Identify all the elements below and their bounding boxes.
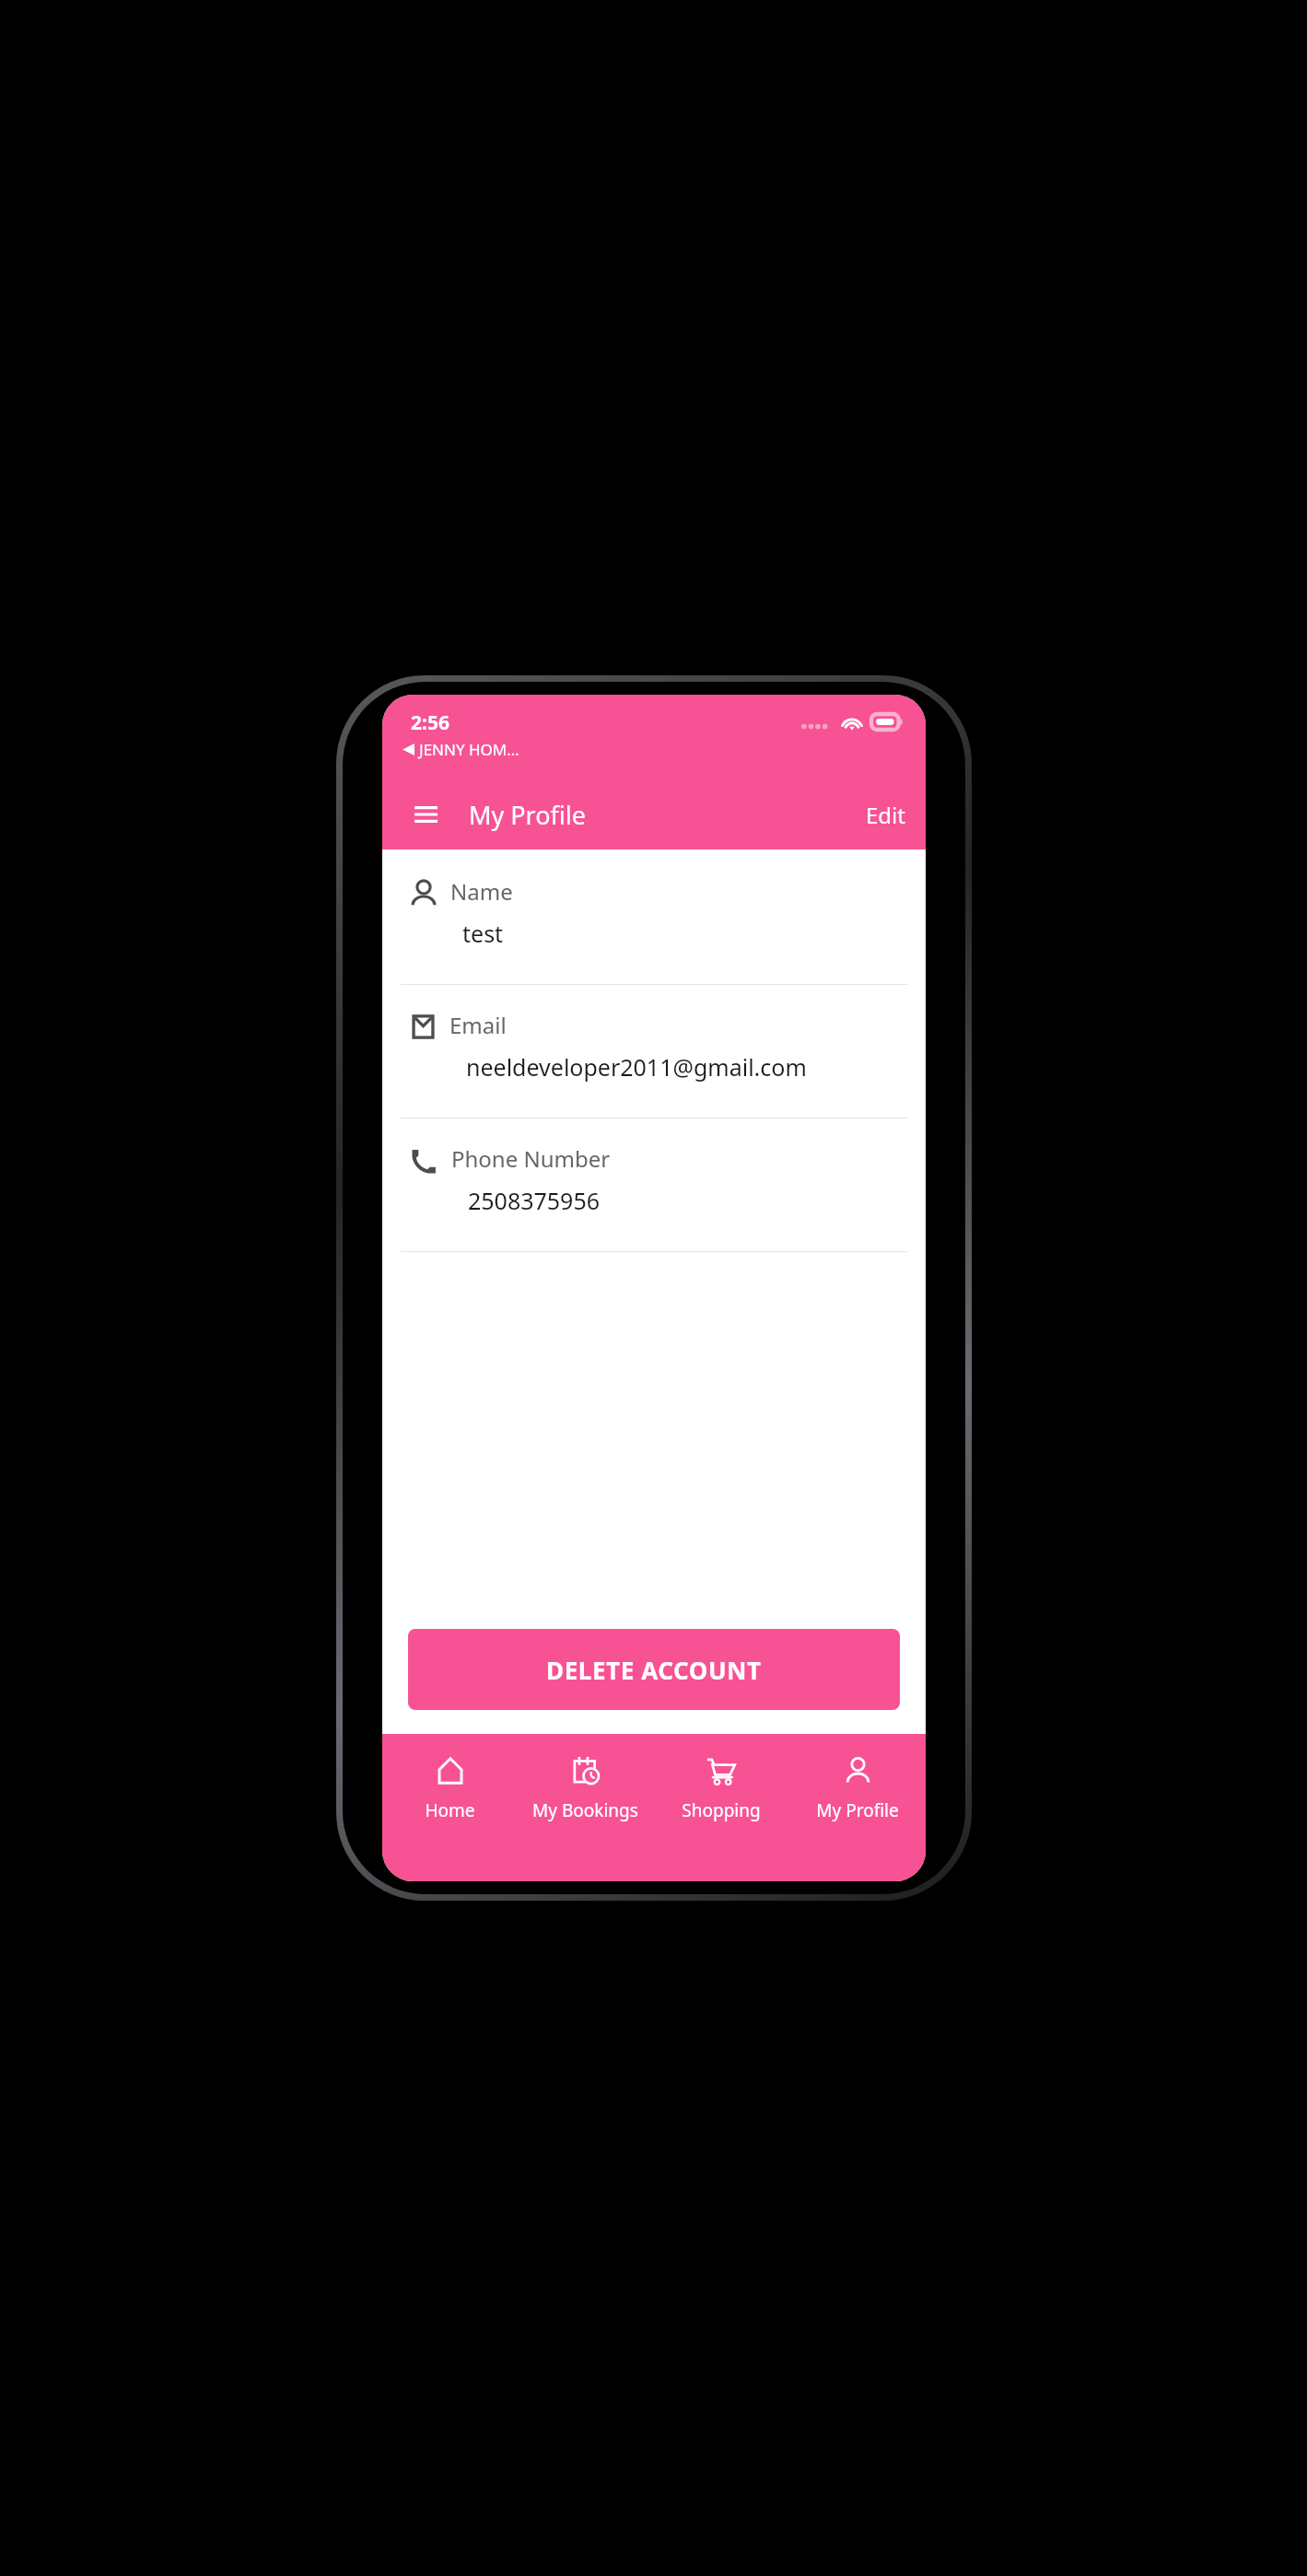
button[interactable]: My Bookings	[518, 1734, 653, 1881]
button[interactable]: Email	[382, 985, 926, 1118]
staticText: Email	[449, 1010, 507, 1040]
staticText: 2508375956	[468, 1185, 601, 1216]
staticText: Name	[450, 876, 513, 907]
staticText: neeldeveloper2011@gmail.com	[466, 1051, 807, 1083]
staticText: My Profile	[816, 1798, 899, 1822]
staticText: Edit	[866, 800, 905, 830]
button[interactable]: Phone Number	[382, 1118, 926, 1252]
staticText: Home	[425, 1798, 475, 1822]
button[interactable]: Shopping	[653, 1734, 789, 1881]
staticText: Phone Number	[451, 1143, 611, 1174]
button[interactable]: Name	[382, 849, 926, 985]
staticText: My Profile	[469, 798, 587, 832]
staticText: DELETE ACCOUNT	[546, 1654, 762, 1686]
button[interactable]: My Profile	[789, 1734, 926, 1881]
button[interactable]: Edit	[846, 789, 926, 841]
staticText: JENNY HOM…	[419, 739, 519, 760]
staticText: 2:56	[411, 709, 449, 736]
staticText: Shopping	[682, 1798, 761, 1822]
button[interactable]: DELETE ACCOUNT	[408, 1629, 900, 1710]
button[interactable]: Open navigation menu	[404, 793, 447, 836]
staticText: My Bookings	[532, 1798, 638, 1822]
staticText: test	[462, 918, 504, 949]
button[interactable]: Home	[382, 1734, 518, 1881]
